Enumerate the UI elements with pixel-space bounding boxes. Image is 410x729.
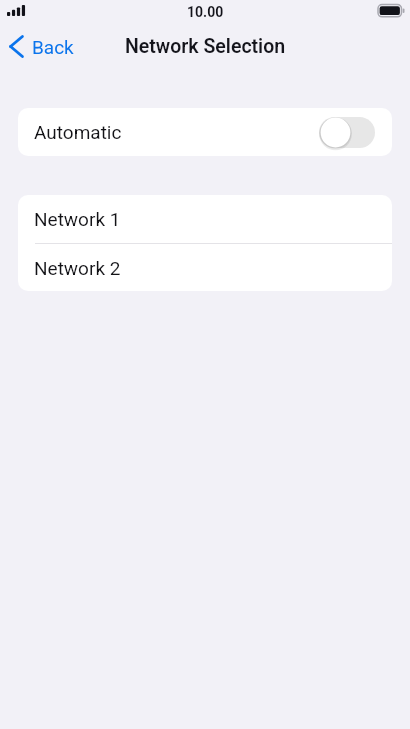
button[interactable]: Automatic network selection toggle xyxy=(319,117,375,148)
staticText: Back xyxy=(32,36,74,58)
staticText: Network Selection xyxy=(125,35,286,58)
other: Cellular signal xyxy=(7,5,27,17)
button[interactable]: Network 1 xyxy=(18,195,392,243)
button[interactable]: Automatic xyxy=(18,108,392,156)
staticText: Automatic xyxy=(34,121,122,143)
button[interactable]: Network 2 xyxy=(18,244,392,291)
staticText: Network 1 xyxy=(34,208,121,230)
button[interactable]: Back xyxy=(0,31,84,62)
staticText: 10.00 xyxy=(187,4,224,20)
other: Battery full xyxy=(377,4,406,18)
staticText: Network 2 xyxy=(34,257,121,279)
